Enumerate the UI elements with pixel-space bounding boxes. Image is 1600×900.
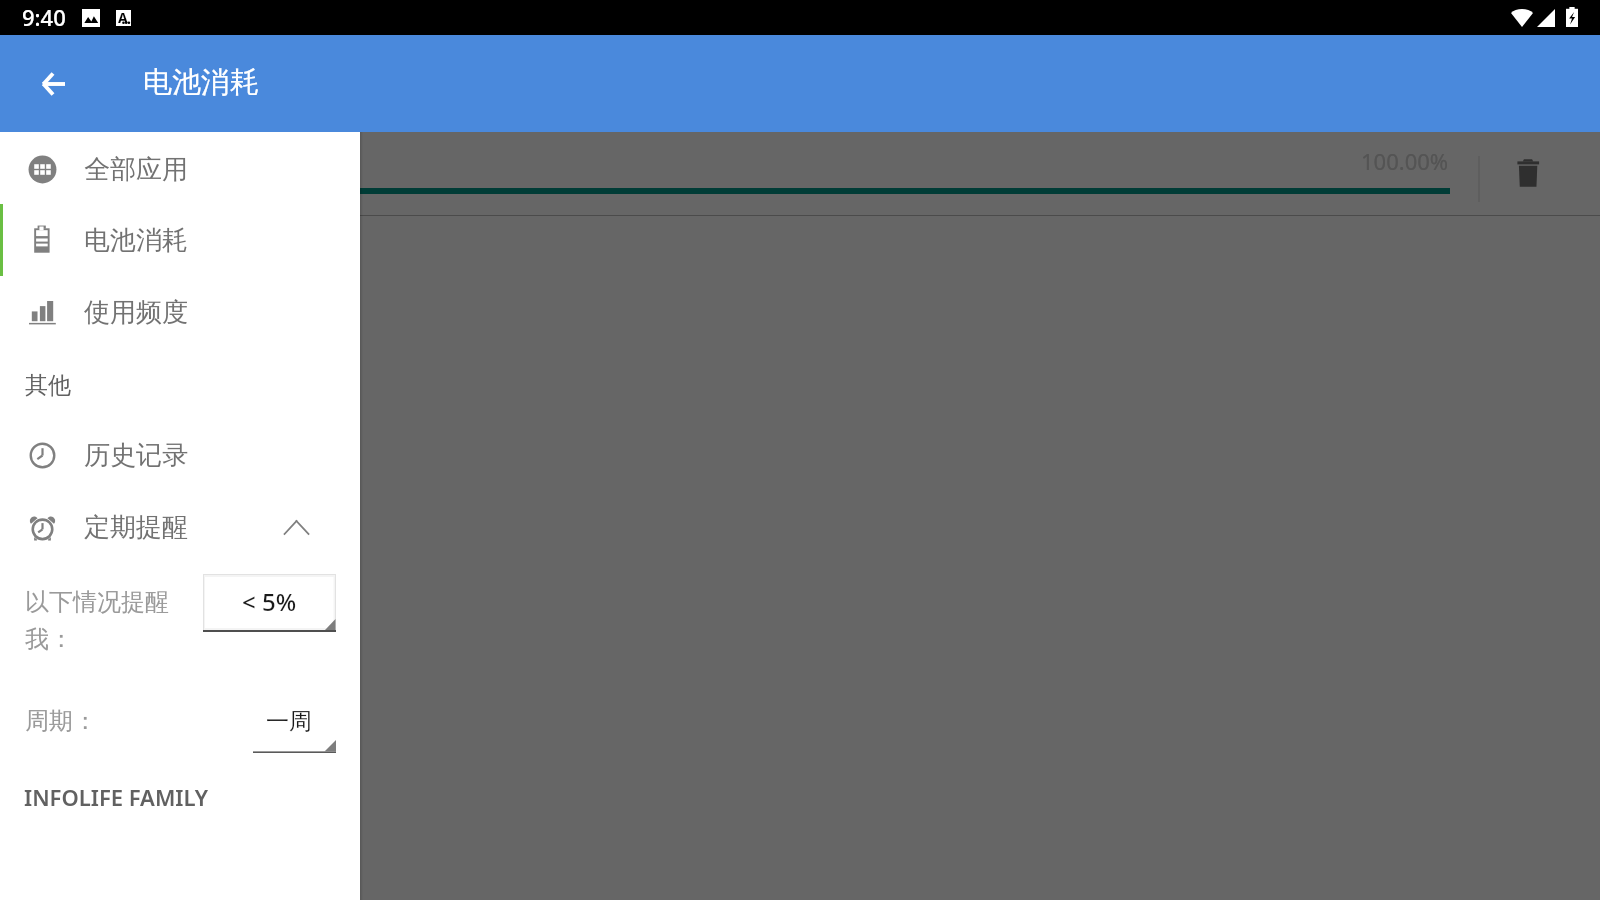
button[interactable]: 100.00% <box>0 132 1600 215</box>
staticText: 其他 <box>25 371 71 400</box>
button[interactable]: 历史记录 <box>0 419 360 491</box>
staticText: 电池消耗 <box>84 224 188 257</box>
staticText: 全部应用 <box>84 153 188 186</box>
button[interactable]: Delete <box>1493 132 1563 215</box>
button[interactable]: 使用频度 <box>0 276 360 348</box>
button[interactable]: 定期提醒 <box>0 491 360 563</box>
staticText: 以下情况提醒 我： <box>25 587 169 654</box>
staticText: 100.00% <box>1361 146 1449 176</box>
staticText: 9:40 <box>22 2 66 32</box>
staticText: 定期提醒 <box>84 511 188 544</box>
staticText: INFOLIFE FAMILY <box>24 782 209 812</box>
staticText: 使用频度 <box>84 296 188 329</box>
button[interactable]: < 5% <box>203 574 336 633</box>
staticText: < 5% <box>242 585 297 618</box>
button[interactable]: Back <box>28 59 78 109</box>
staticText: 周期： <box>25 706 97 736</box>
staticText: A <box>118 8 128 24</box>
staticText: 历史记录 <box>84 439 188 472</box>
button[interactable]: 电池消耗 <box>0 204 360 276</box>
button[interactable]: 全部应用 <box>0 133 360 205</box>
staticText: 电池消耗 <box>143 64 259 101</box>
staticText: 一周 <box>266 707 312 736</box>
button[interactable]: 一周 <box>253 707 336 753</box>
